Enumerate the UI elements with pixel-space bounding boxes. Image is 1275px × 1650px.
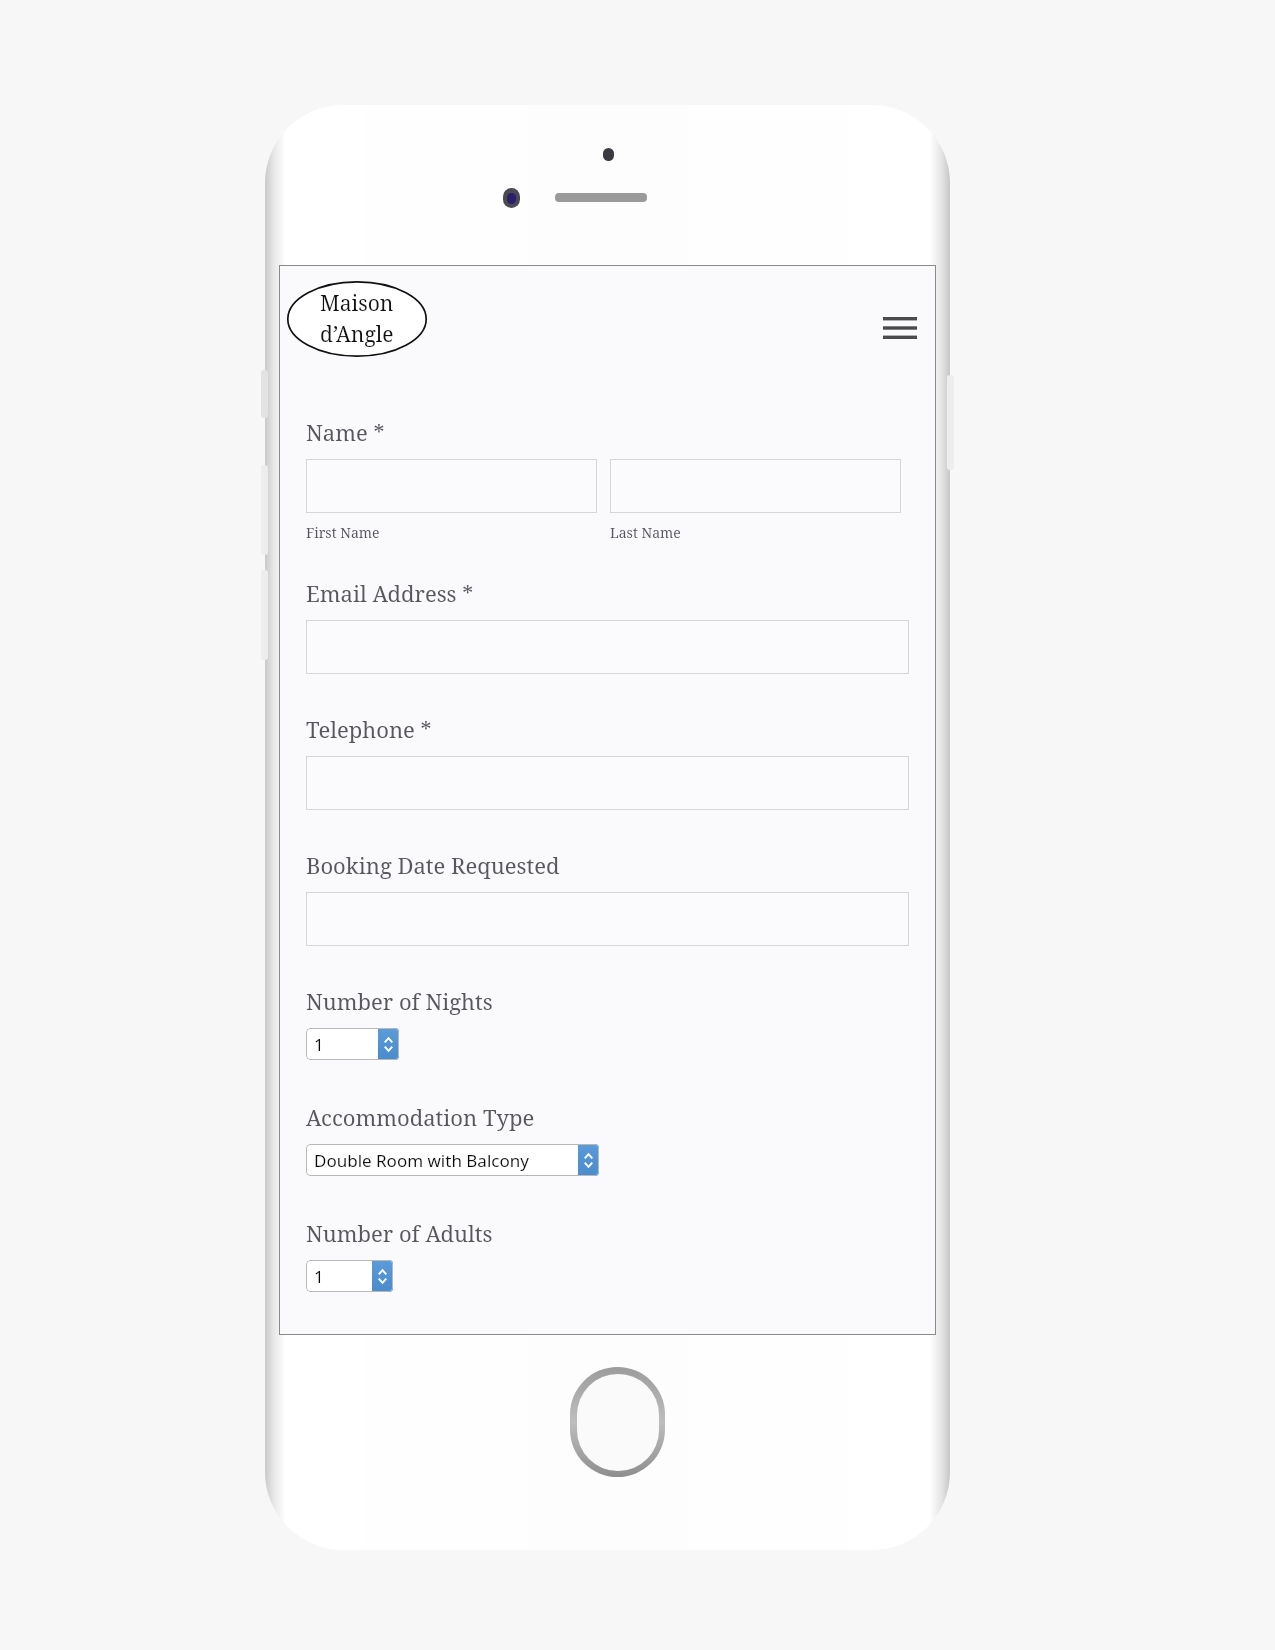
button[interactable] bbox=[306, 459, 597, 513]
staticText: 1 bbox=[314, 1033, 324, 1056]
staticText: First Name bbox=[306, 523, 380, 542]
button[interactable]: Home bbox=[570, 1367, 665, 1477]
staticText: Telephone * bbox=[306, 714, 432, 744]
staticText: d’Angle bbox=[320, 320, 394, 349]
staticText: Number of Nights bbox=[306, 986, 493, 1016]
staticText: Maison bbox=[320, 289, 394, 318]
staticText: Accommodation Type bbox=[306, 1102, 535, 1132]
button[interactable]: Double Room with Balcony bbox=[306, 1144, 599, 1176]
staticText: Number of Adults bbox=[306, 1218, 493, 1248]
button[interactable]: 1 bbox=[306, 1028, 399, 1060]
button[interactable] bbox=[306, 620, 909, 674]
button[interactable] bbox=[306, 892, 909, 946]
staticText: Last Name bbox=[610, 523, 681, 542]
button[interactable]: Menu bbox=[880, 311, 920, 345]
button[interactable]: Maison bbox=[287, 281, 427, 357]
button[interactable] bbox=[306, 756, 909, 810]
staticText: Name * bbox=[306, 417, 385, 447]
button[interactable] bbox=[610, 459, 901, 513]
staticText: 1 bbox=[314, 1265, 324, 1288]
button[interactable]: 1 bbox=[306, 1260, 393, 1292]
staticText: Booking Date Requested bbox=[306, 850, 560, 880]
staticText: Email Address * bbox=[306, 578, 474, 608]
staticText: Double Room with Balcony bbox=[314, 1149, 529, 1172]
